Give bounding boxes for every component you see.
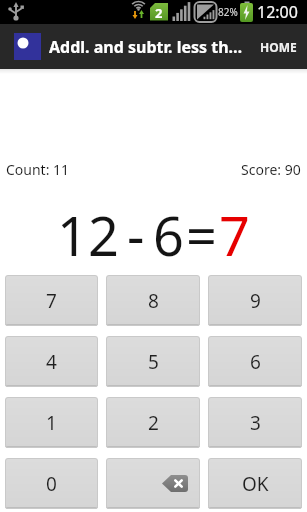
button[interactable]: 6 [208,336,302,387]
button[interactable]: 8 [106,275,200,326]
button[interactable]: 0 [5,458,98,509]
button[interactable]: 2 [106,397,200,448]
staticText: 2 [155,4,163,22]
staticText: 6 [250,349,261,375]
staticText: 7 [46,288,57,314]
button[interactable]: 9 [208,275,302,326]
staticText: 1 [46,410,57,436]
staticText: 2 [148,410,159,436]
button[interactable] [106,458,200,509]
staticText: Score: 90 [241,160,301,179]
staticText: HOME [260,39,297,55]
staticText: 0 [46,471,57,497]
staticText: 8 [148,288,159,314]
staticText: Count: 11 [6,160,70,179]
staticText: 82% [218,5,238,19]
button[interactable]: HOME [250,27,307,67]
staticText: 4 [46,349,57,375]
button[interactable]: 4 [5,336,98,387]
button[interactable]: 3 [208,397,302,448]
staticText: 9 [250,288,261,314]
button[interactable]: OK [208,458,302,509]
staticText: 3 [250,410,261,436]
staticText: Addl. and subtr. less th… [49,36,250,58]
button[interactable]: 5 [106,336,200,387]
staticText: 5 [148,349,159,375]
staticText: 12:00 [257,1,298,23]
staticText: 12 [57,198,119,272]
staticText: 7 [219,198,250,272]
staticText: 6 [153,198,184,272]
button[interactable]: 1 [5,397,98,448]
button[interactable]: 7 [5,275,98,326]
staticText: OK [242,471,269,497]
staticText: = [186,198,217,272]
staticText: - [127,198,145,272]
